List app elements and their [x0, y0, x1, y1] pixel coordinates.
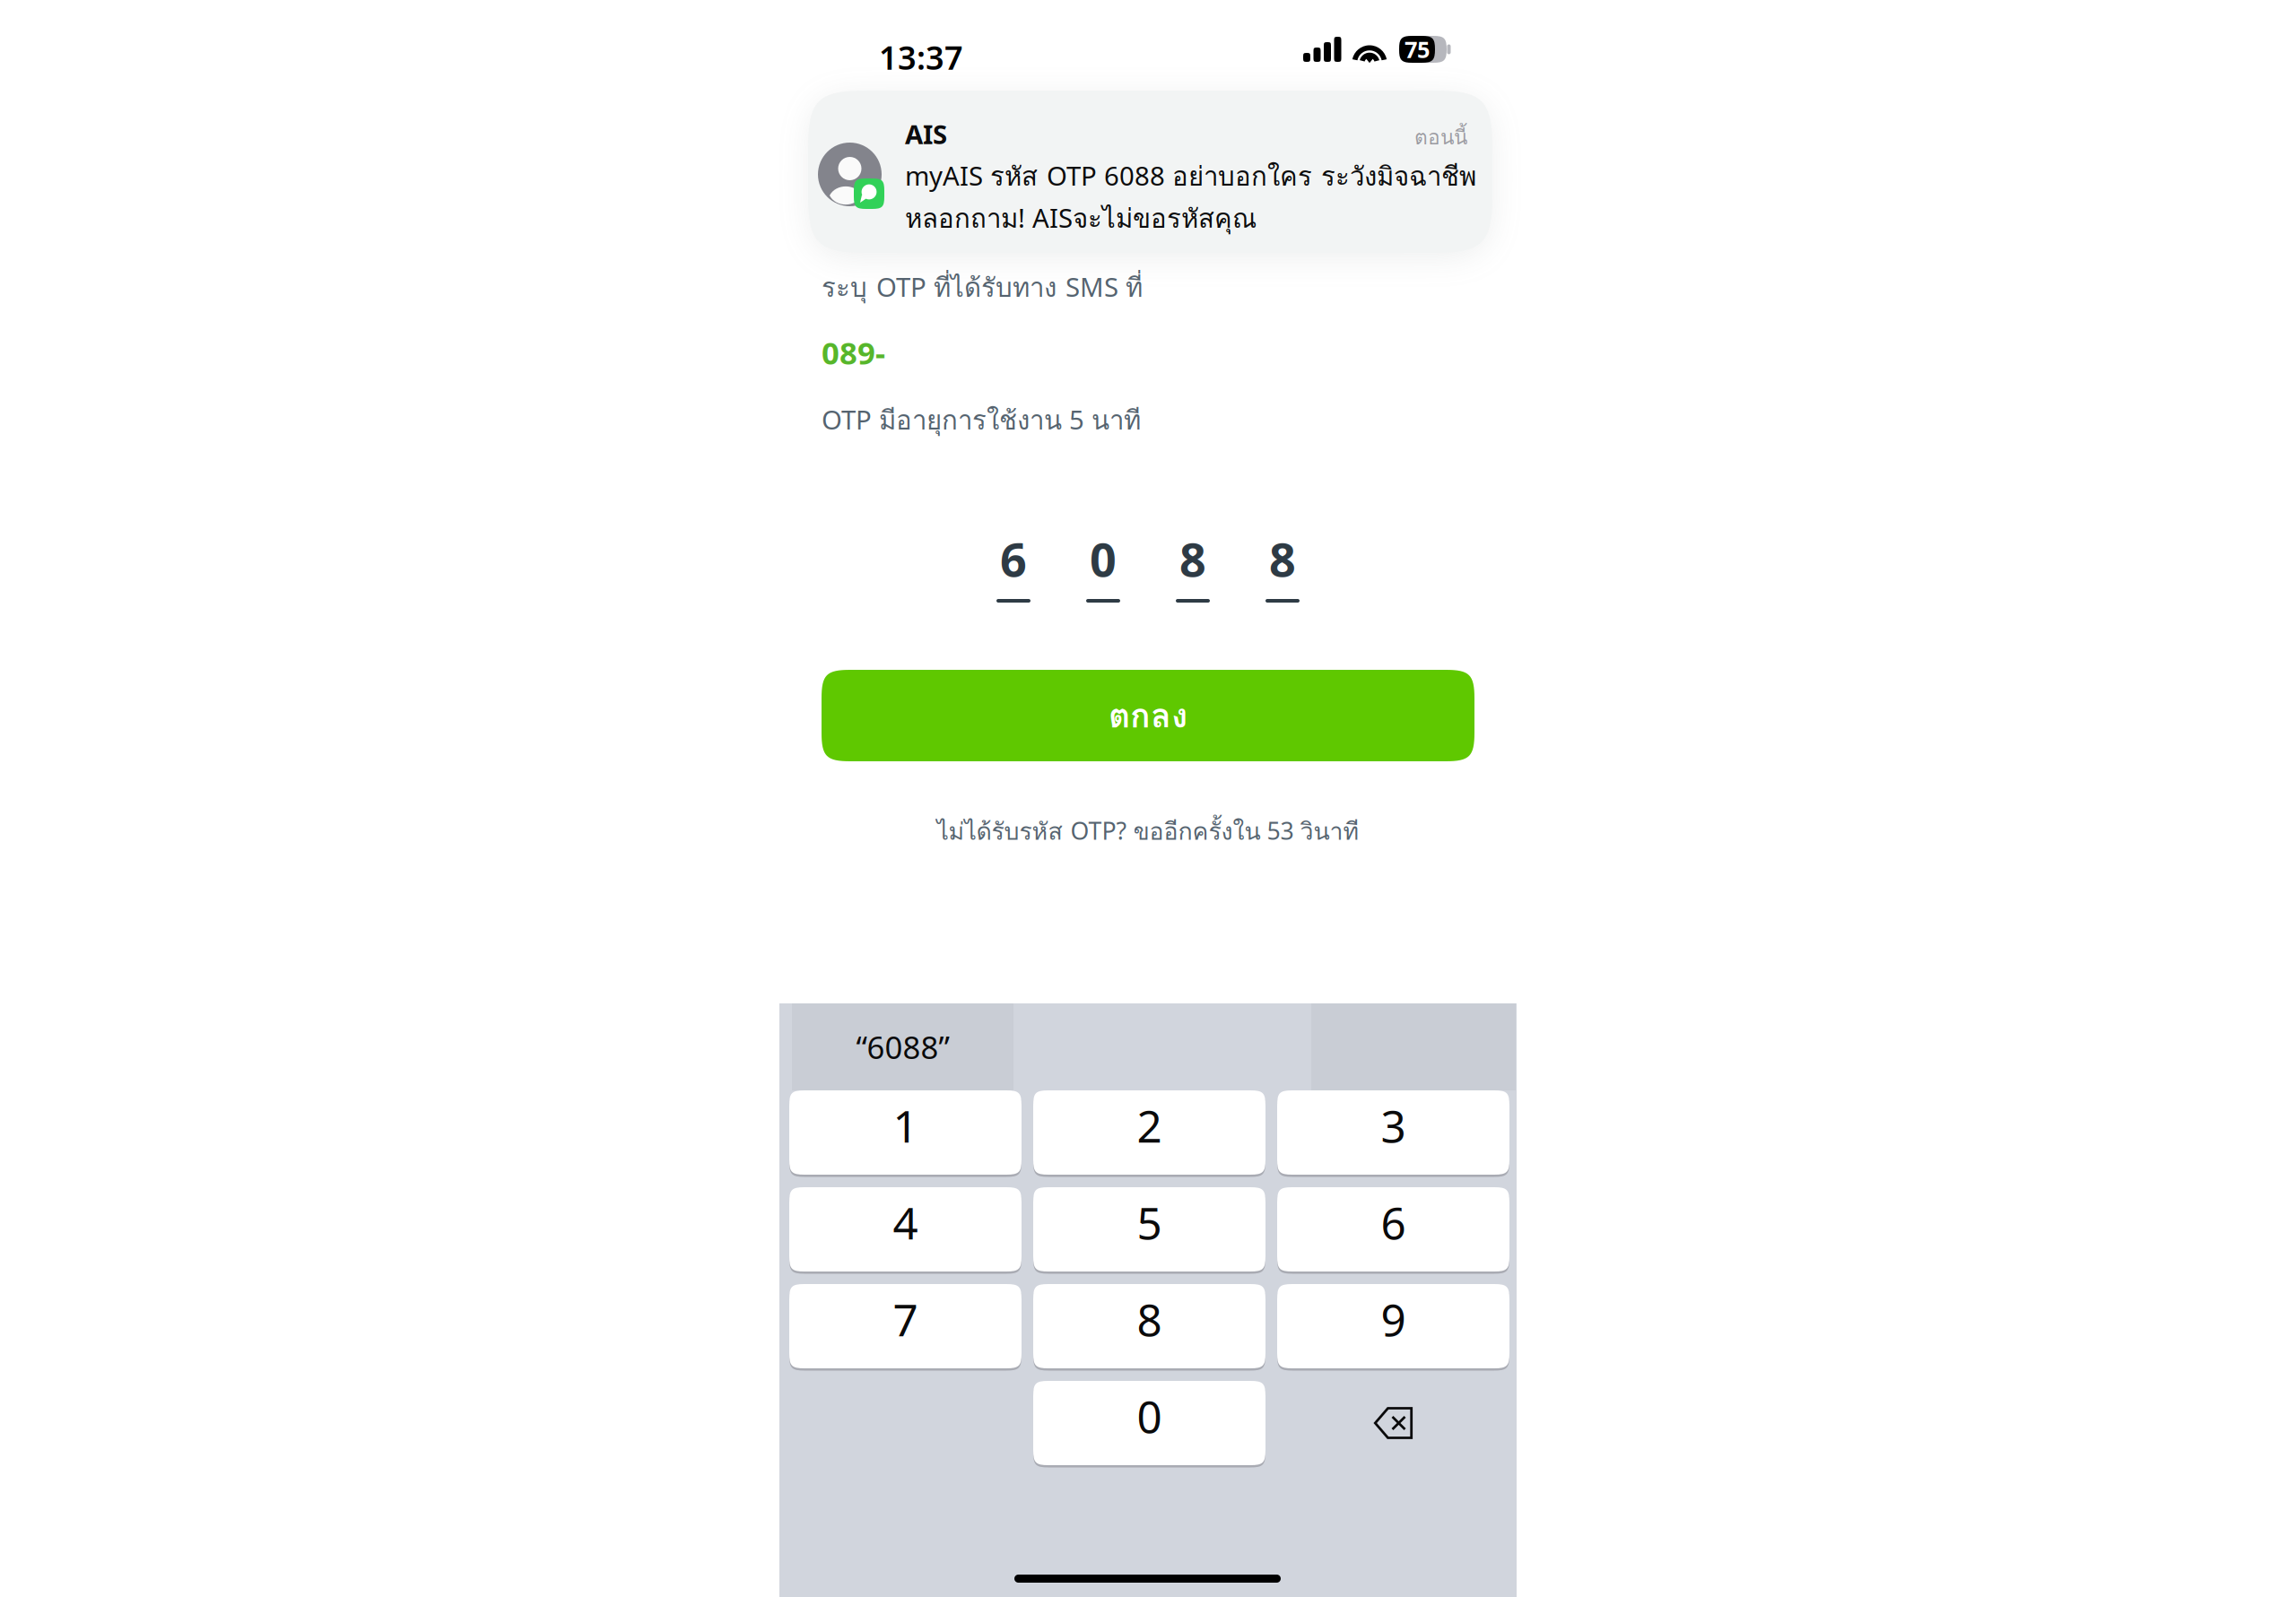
staticText: “6088”: [856, 1026, 949, 1068]
staticText: 6: [1381, 1193, 1406, 1252]
button[interactable]: Delete: [1277, 1381, 1509, 1465]
button[interactable]: 7: [789, 1284, 1022, 1371]
staticText: 089-: [822, 332, 885, 373]
button[interactable]: 8: [1033, 1284, 1265, 1371]
staticText: 6: [1000, 528, 1027, 590]
staticText: ตกลง: [1109, 690, 1187, 742]
staticText: 5: [1137, 1193, 1162, 1252]
button[interactable]: 5: [1033, 1187, 1265, 1274]
button[interactable]: ตกลง: [822, 670, 1474, 761]
button[interactable]: ไม่ได้รับรหัส OTP? ขออีกครั้งใน 53 วินาท…: [779, 810, 1517, 853]
button[interactable]: 2: [1033, 1090, 1265, 1177]
staticText: 7: [893, 1290, 918, 1348]
staticText: ตอนนี้: [1414, 121, 1467, 153]
staticText: 4: [893, 1193, 918, 1252]
staticText: 8: [1137, 1290, 1162, 1348]
staticText: ไม่ได้รับรหัส OTP? ขออีกครั้งใน 53 วินาท…: [937, 813, 1359, 850]
staticText: 8: [1269, 528, 1296, 590]
staticText: 8: [1179, 528, 1206, 590]
button[interactable]: “6088”: [792, 1003, 1013, 1090]
staticText: 9: [1381, 1290, 1406, 1348]
staticText: ระบุ OTP ที่ได้รับทาง SMS ที่: [822, 267, 1143, 308]
button[interactable]: 4: [789, 1187, 1022, 1274]
staticText: 75: [1405, 34, 1430, 64]
staticText: หลอกถาม! AISจะไม่ขอรหัสคุณ: [905, 198, 1257, 239]
staticText: AIS: [905, 117, 947, 152]
button[interactable]: 9: [1277, 1284, 1509, 1371]
button[interactable]: 0: [1033, 1381, 1265, 1468]
button[interactable]: 3: [1277, 1090, 1509, 1177]
staticText: 2: [1137, 1096, 1162, 1155]
button[interactable]: 6: [1277, 1187, 1509, 1274]
staticText: 1: [893, 1096, 918, 1155]
staticText: 3: [1381, 1096, 1406, 1155]
button[interactable]: 1: [789, 1090, 1022, 1177]
staticText: 13:37: [879, 36, 963, 79]
staticText: 0: [1137, 1386, 1162, 1445]
staticText: myAIS รหัส OTP 6088 อย่าบอกใคร ระวังมิจฉ…: [905, 156, 1476, 197]
staticText: OTP มีอายุการใช้งาน 5 นาที: [822, 400, 1141, 441]
staticText: 0: [1090, 528, 1117, 590]
